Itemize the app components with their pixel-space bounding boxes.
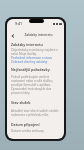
button[interactable]: Back	[9, 32, 16, 39]
staticText: Objednávky a smlouvy najdete v sekci Moj…	[11, 48, 63, 56]
staticText: Podrobné informace o stavu	[11, 56, 53, 60]
staticText: Nejčastější požadavky	[11, 67, 50, 72]
staticText: 9:41	[15, 21, 23, 26]
staticText: Stav služeb	[11, 100, 31, 105]
staticText: Aktuální stav všech vašich služeb nalezn…	[11, 109, 63, 117]
staticText: Zakázky internetu	[14, 33, 63, 37]
staticText: Pokud potřebujete změnit nastavení nebo …	[11, 75, 63, 95]
staticText: Zobrazit všechny zakázky	[11, 60, 48, 64]
staticText: Zakázky internetu	[11, 42, 43, 47]
staticText: Datum vzniku smlouvy	[11, 129, 44, 133]
staticText: Datum připojení	[11, 122, 40, 127]
